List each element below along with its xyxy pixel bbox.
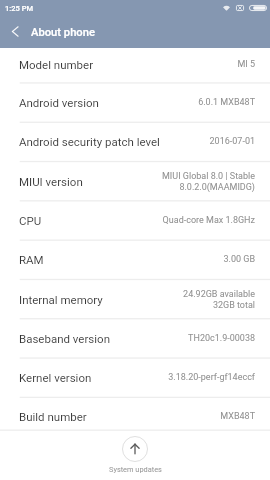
staticText: 8.0.2.0(MAAMIDG) xyxy=(179,182,255,193)
button[interactable]: System updates xyxy=(0,436,270,474)
staticText: 32GB total xyxy=(212,300,255,311)
button[interactable]: RAM xyxy=(0,239,270,278)
button[interactable]: Baseband version xyxy=(0,318,270,357)
button[interactable]: CPU xyxy=(0,200,270,239)
button[interactable]: Android version xyxy=(0,82,270,121)
staticText: 2016-07-01 xyxy=(209,136,255,147)
button[interactable]: Build number xyxy=(0,396,270,435)
staticText: Android version xyxy=(19,96,99,109)
button[interactable]: Back xyxy=(0,17,28,48)
button[interactable]: Kernel version xyxy=(0,357,270,396)
button[interactable]: Model number xyxy=(0,48,270,82)
staticText: Quad-core Max 1.8GHz xyxy=(162,215,255,226)
staticText: 3.18.20-perf-gf14eccf xyxy=(168,372,255,383)
staticText: Kernel version xyxy=(19,371,92,384)
staticText: About phone xyxy=(31,26,95,39)
staticText: 24.92GB available xyxy=(183,289,255,300)
button[interactable]: Internal memory xyxy=(0,279,270,318)
staticText: MXB48T xyxy=(220,411,255,422)
staticText: Baseband version xyxy=(19,332,110,345)
staticText: 6.0.1 MXB48T xyxy=(198,97,255,108)
staticText: Internal memory xyxy=(19,293,103,306)
staticText: 3.00 GB xyxy=(223,254,255,265)
staticText: TH20c1.9-00038 xyxy=(188,333,255,344)
staticText: MIUI version xyxy=(19,175,83,188)
staticText: Build number xyxy=(19,410,87,423)
staticText: CPU xyxy=(19,214,42,227)
staticText: 1:25 PM xyxy=(5,4,34,13)
button[interactable]: MIUI version xyxy=(0,161,270,200)
staticText: RAM xyxy=(19,253,44,266)
staticText: System updates xyxy=(109,465,162,474)
staticText: Android security patch level xyxy=(19,135,160,148)
staticText: Model number xyxy=(19,58,94,71)
button[interactable]: Android security patch level xyxy=(0,121,270,160)
staticText: MIUI Global 8.0 | Stable xyxy=(162,171,255,182)
staticText: MI 5 xyxy=(237,59,255,70)
